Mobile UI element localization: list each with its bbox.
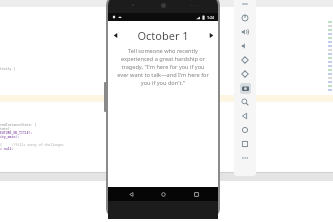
staticText: { bbox=[0, 143, 4, 147]
staticText: EATURE_NO_TITLE); bbox=[0, 131, 33, 135]
button[interactable]: Previous day bbox=[108, 27, 122, 43]
staticText: 1:24 bbox=[207, 15, 215, 20]
button[interactable]: Home bbox=[153, 187, 173, 201]
button[interactable]: More bbox=[234, 151, 256, 165]
button[interactable]: Rotate right bbox=[234, 67, 256, 81]
button[interactable]: Back bbox=[234, 109, 256, 123]
button[interactable]: Volume up bbox=[234, 25, 256, 39]
button[interactable]: Screenshot bbox=[234, 81, 256, 95]
button[interactable]: Home bbox=[234, 123, 256, 137]
staticText: ity_main); bbox=[0, 135, 20, 139]
staticText: //fills array of challenges bbox=[12, 143, 64, 147]
button[interactable]: Rotate left bbox=[234, 53, 256, 67]
button[interactable]: Back bbox=[121, 187, 141, 201]
staticText: October 1 bbox=[122, 28, 204, 43]
staticText: = null; bbox=[0, 147, 14, 151]
button[interactable]: Overview bbox=[234, 137, 256, 151]
button[interactable]: Recent apps bbox=[186, 187, 206, 201]
button[interactable]: Power bbox=[234, 11, 256, 25]
staticText: tate); bbox=[0, 127, 12, 131]
button[interactable]: Close bbox=[234, 0, 256, 11]
staticText: vedInstanceState: { bbox=[0, 123, 37, 127]
button[interactable]: Volume down bbox=[234, 39, 256, 53]
staticText: Tell someone who recently experienced a … bbox=[117, 47, 209, 87]
staticText: tivity { bbox=[0, 67, 16, 71]
button[interactable]: Zoom bbox=[234, 95, 256, 109]
button[interactable]: Next day bbox=[204, 27, 218, 43]
